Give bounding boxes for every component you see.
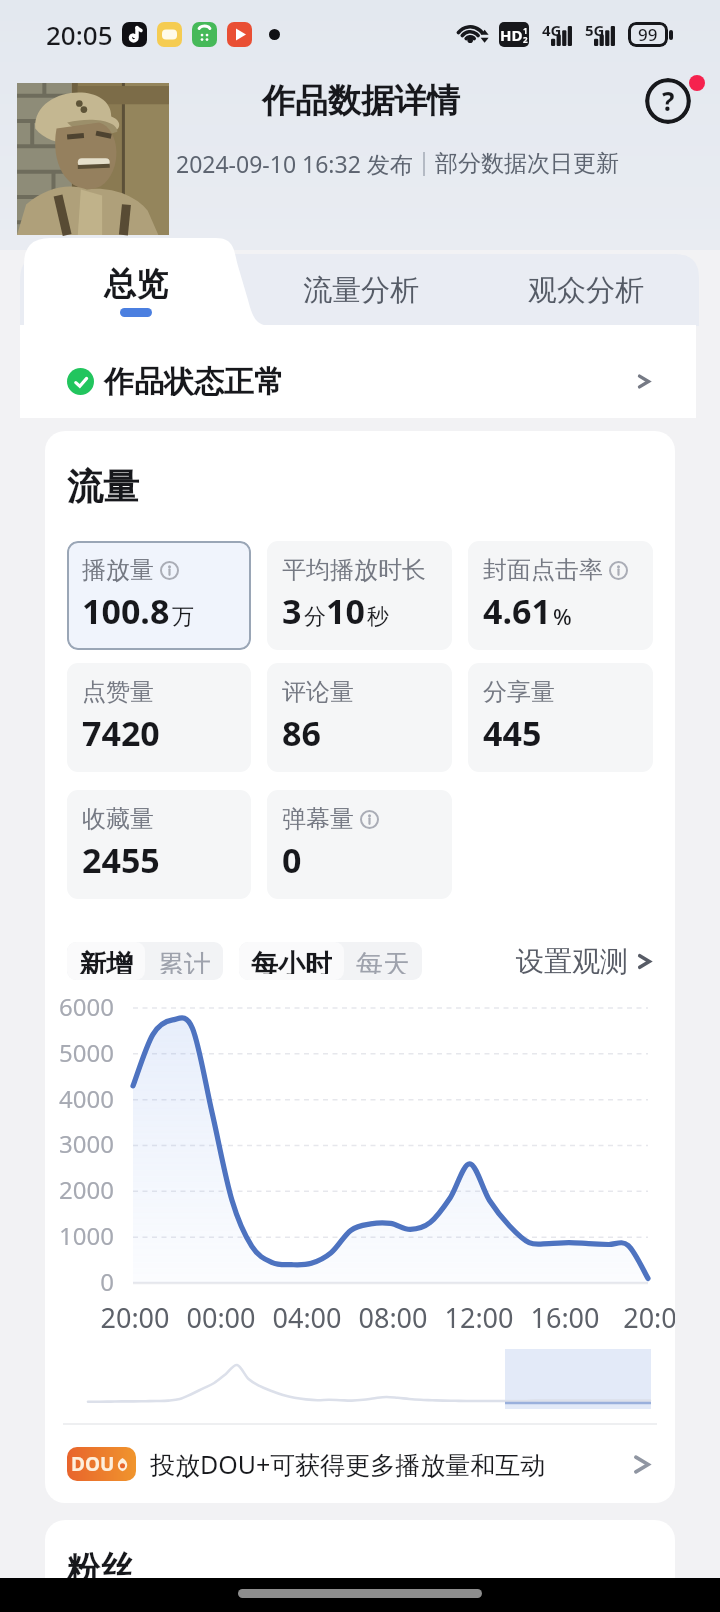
staticText: 1 bbox=[523, 25, 528, 36]
staticText: 20:05 bbox=[46, 17, 113, 52]
staticText: 7420 bbox=[82, 710, 160, 756]
button[interactable]: 新增 bbox=[67, 942, 145, 980]
staticText: 2024-09-10 16:32 发布 bbox=[176, 148, 413, 179]
staticText: 3000 bbox=[45, 1127, 114, 1160]
staticText: 作品数据详情 bbox=[262, 80, 460, 122]
button[interactable]: 总览 bbox=[24, 238, 248, 326]
staticText: 评论量 bbox=[282, 677, 354, 707]
staticText: 作品状态正常 bbox=[104, 363, 284, 401]
button[interactable]: 播放量 bbox=[67, 541, 251, 650]
staticText: 分 bbox=[304, 603, 326, 631]
button[interactable]: 设置观测 bbox=[516, 944, 653, 979]
staticText: 每小时 bbox=[251, 948, 332, 974]
staticText: 每天 bbox=[356, 948, 410, 974]
staticText: 分享量 bbox=[483, 677, 555, 707]
staticText: 2455 bbox=[82, 837, 160, 883]
staticText: 20:0 bbox=[607, 1299, 675, 1336]
staticText: 5G bbox=[585, 20, 605, 40]
button[interactable]: 分享量 bbox=[468, 663, 653, 772]
button[interactable]: 流量分析 bbox=[278, 254, 443, 326]
staticText: 封面点击率 bbox=[483, 555, 603, 585]
staticText: 86 bbox=[282, 710, 321, 756]
staticText: 总览 bbox=[104, 264, 168, 304]
staticText: 1000 bbox=[45, 1219, 114, 1252]
staticText: 10 bbox=[326, 588, 365, 634]
staticText: 粉丝 bbox=[67, 1548, 133, 1590]
staticText: 部分数据次日更新 bbox=[435, 149, 619, 178]
staticText: 2 bbox=[523, 34, 528, 45]
button[interactable]: DOU bbox=[45, 1425, 675, 1503]
staticText: 4G bbox=[542, 20, 562, 40]
staticText: 累计 bbox=[157, 948, 211, 974]
staticText: 4.61 bbox=[483, 588, 551, 634]
button[interactable]: 评论量 bbox=[267, 663, 452, 772]
button[interactable]: Help bbox=[645, 78, 691, 124]
staticText: 投放DOU+可获得更多播放量和互动 bbox=[150, 1447, 546, 1481]
button[interactable]: 收藏量 bbox=[67, 790, 251, 899]
staticText: 6000 bbox=[45, 990, 114, 1023]
button[interactable]: 每小时 bbox=[239, 942, 344, 980]
staticText: 点赞量 bbox=[82, 677, 154, 707]
staticText: 流量 bbox=[67, 464, 139, 509]
staticText: 弹幕量 bbox=[282, 804, 354, 834]
staticText: ? bbox=[662, 83, 675, 118]
staticText: 设置观测 bbox=[516, 944, 628, 979]
staticText: 08:00 bbox=[350, 1299, 436, 1336]
staticText: 4000 bbox=[45, 1082, 114, 1115]
staticText: 播放量 bbox=[82, 555, 154, 585]
button[interactable]: 点赞量 bbox=[67, 663, 251, 772]
button[interactable]: 封面点击率 bbox=[468, 541, 653, 650]
button[interactable]: 弹幕量 bbox=[267, 790, 452, 899]
staticText: 12:00 bbox=[436, 1299, 522, 1336]
staticText: 0 bbox=[45, 1265, 114, 1298]
button[interactable]: 作品状态正常 bbox=[20, 325, 696, 418]
staticText: 平均播放时长 bbox=[282, 555, 426, 585]
staticText: 5000 bbox=[45, 1036, 114, 1069]
staticText: 收藏量 bbox=[82, 804, 154, 834]
staticText: 00:00 bbox=[178, 1299, 264, 1336]
staticText: 2000 bbox=[45, 1173, 114, 1206]
staticText: 0 bbox=[282, 837, 302, 883]
staticText: 445 bbox=[483, 710, 542, 756]
staticText: 流量分析 bbox=[303, 272, 419, 309]
staticText: 3 bbox=[282, 588, 302, 634]
staticText: 20:00 bbox=[92, 1299, 178, 1336]
staticText: 秒 bbox=[367, 603, 389, 631]
staticText: 观众分析 bbox=[528, 272, 644, 309]
staticText: 新增 bbox=[79, 948, 133, 974]
button[interactable]: 累计 bbox=[145, 942, 223, 980]
staticText: DOU bbox=[71, 1451, 115, 1477]
staticText: 16:00 bbox=[522, 1299, 608, 1336]
staticText: 100.8 bbox=[82, 588, 170, 634]
staticText: 04:00 bbox=[264, 1299, 350, 1336]
staticText: 万 bbox=[172, 603, 194, 631]
button[interactable]: 每天 bbox=[344, 942, 422, 980]
button[interactable]: 平均播放时长 bbox=[267, 541, 452, 650]
staticText: 99 bbox=[638, 23, 658, 46]
staticText: % bbox=[553, 601, 572, 631]
staticText: HD bbox=[500, 25, 523, 45]
button[interactable]: 观众分析 bbox=[503, 254, 668, 326]
